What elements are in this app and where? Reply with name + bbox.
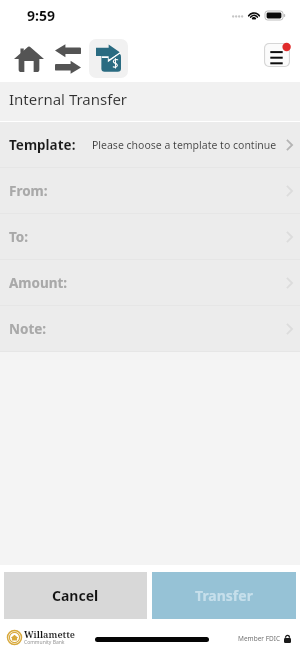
button[interactable]: From: xyxy=(0,168,300,214)
staticText: Community Bank xyxy=(24,639,65,646)
button[interactable]: Cancel xyxy=(4,572,147,619)
button[interactable]: Note: xyxy=(0,306,300,352)
staticText: Amount: xyxy=(9,274,68,292)
staticText: 9:59 xyxy=(27,6,55,25)
staticText: Transfer xyxy=(195,586,253,605)
staticText: Willamette xyxy=(24,628,75,640)
button[interactable]: Template: xyxy=(0,122,300,168)
button[interactable]: Transfer xyxy=(152,572,296,619)
button[interactable]: To: xyxy=(0,214,300,260)
button[interactable]: Amount: xyxy=(0,260,300,306)
staticText: From: xyxy=(9,182,48,200)
staticText: Cancel xyxy=(52,586,99,605)
staticText: Template: xyxy=(9,136,76,154)
staticText: Please choose a template to continue xyxy=(92,138,277,152)
staticText: Note: xyxy=(9,320,47,338)
staticText: Internal Transfer xyxy=(9,89,128,109)
button[interactable]: Internal transfer xyxy=(89,39,128,78)
button[interactable]: Home xyxy=(9,43,48,74)
staticText: To: xyxy=(9,228,29,246)
button[interactable]: Transfers xyxy=(51,41,85,76)
button[interactable]: Menu xyxy=(264,43,292,69)
staticText: Member FDIC xyxy=(238,634,281,643)
